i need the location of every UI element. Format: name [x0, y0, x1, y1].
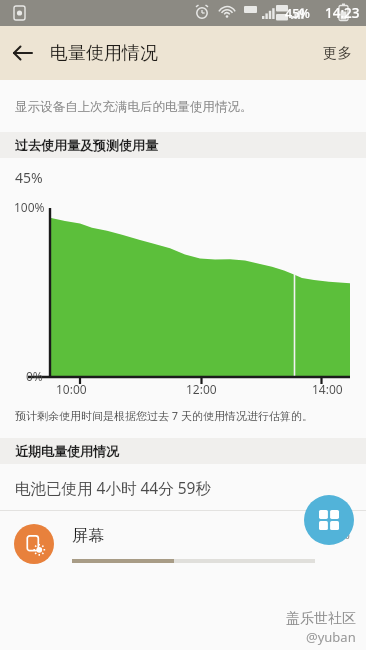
- button[interactable]: 更多: [309, 32, 366, 74]
- staticText: 10:00: [56, 381, 87, 397]
- staticText: 电池已使用 4小时 44分 59秒: [15, 477, 211, 498]
- staticText: 近期电量使用情况: [15, 443, 119, 459]
- staticText: 12:00: [186, 381, 217, 397]
- staticText: 过去使用量及预测使用量: [15, 137, 158, 153]
- staticText: 显示设备自上次充满电后的电量使用情况。: [15, 99, 253, 115]
- staticText: 屏幕: [72, 526, 104, 546]
- staticText: 45%: [15, 168, 43, 187]
- staticText: 预计剩余使用时间是根据您过去 7 天的使用情况进行估算的。: [15, 408, 314, 423]
- staticText: 14:23: [325, 4, 360, 22]
- button[interactable]: 屏幕: [0, 511, 366, 577]
- staticText: 盖乐世社区: [286, 610, 356, 628]
- staticText: 0%: [26, 368, 43, 384]
- staticText: @yuban: [306, 628, 356, 646]
- staticText: 更多: [323, 44, 352, 62]
- staticText: 100%: [14, 199, 45, 215]
- staticText: 电量使用情况: [50, 42, 158, 65]
- button[interactable]: Back: [0, 31, 44, 75]
- button[interactable]: Apps grid: [304, 495, 354, 545]
- staticText: 42%: [325, 526, 350, 543]
- staticText: 14:00: [312, 381, 343, 397]
- staticText: 45%: [285, 5, 310, 22]
